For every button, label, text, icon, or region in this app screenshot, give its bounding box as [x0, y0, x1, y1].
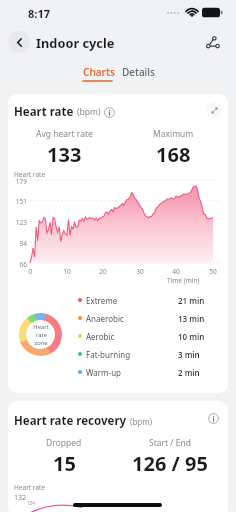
staticText: Heart rate [14, 483, 46, 492]
button[interactable]: Back [8, 31, 30, 53]
staticText: 124 [27, 500, 35, 506]
staticText: Dropped [46, 437, 82, 449]
staticText: Heart [33, 323, 49, 331]
staticText: 94 [10, 239, 27, 248]
staticText: 21 min [178, 295, 205, 306]
staticText: 8:17 [28, 6, 50, 21]
staticText: Extreme [86, 295, 118, 306]
button[interactable]: Info [104, 107, 115, 118]
button[interactable]: Details [117, 63, 160, 81]
staticText: 3 min [178, 349, 200, 360]
staticText: 179 [10, 177, 27, 186]
staticText: Avg heart rate [36, 128, 93, 140]
staticText: (bpm) [130, 416, 153, 427]
staticText: 168 [156, 141, 191, 168]
staticText: 10 [62, 267, 72, 276]
staticText: 10 min [178, 331, 205, 342]
staticText: 123 [10, 218, 27, 227]
staticText: zone [34, 339, 48, 347]
staticText: 30 [135, 267, 145, 276]
staticText: Maximum [153, 128, 194, 140]
staticText: Warm-up [86, 367, 121, 378]
staticText: Indoor cycle [36, 34, 115, 51]
staticText: (bpm) [77, 106, 101, 118]
staticText: Anaerobic [86, 313, 124, 324]
staticText: Heart rate recovery [14, 413, 127, 429]
staticText: 151 [10, 197, 27, 206]
button[interactable]: Share [201, 31, 223, 53]
staticText: 20 [98, 267, 108, 276]
staticText: rate [36, 331, 47, 339]
staticText: 40 [171, 267, 181, 276]
staticText: 2 min [178, 367, 200, 378]
staticText: Heart rate [14, 104, 74, 120]
button[interactable]: Info [208, 413, 219, 424]
button[interactable]: Charts [78, 63, 120, 81]
staticText: 66 [10, 260, 27, 269]
button[interactable]: Expand chart [206, 102, 222, 118]
staticText: Heart rate [14, 170, 46, 179]
staticText: 133 [47, 141, 82, 168]
staticText: Aerobic [86, 331, 115, 342]
staticText: 132 [14, 493, 27, 503]
staticText: 126 / 95 [132, 450, 208, 477]
staticText: Time (min) [167, 276, 200, 285]
staticText: Details [122, 65, 155, 79]
staticText: Start / End [149, 437, 191, 449]
staticText: 13 min [178, 313, 205, 324]
staticText: Charts [83, 65, 115, 79]
staticText: 50 [208, 267, 218, 276]
staticText: 0 [25, 267, 35, 276]
staticText: 15 [53, 450, 76, 477]
staticText: Fat-burning [86, 349, 131, 360]
